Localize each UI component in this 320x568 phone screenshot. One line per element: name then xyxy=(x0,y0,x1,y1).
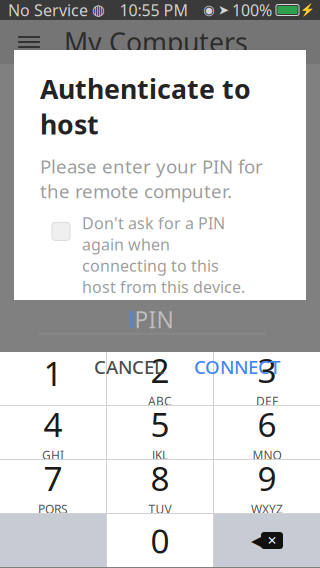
staticText: GHI xyxy=(42,447,64,463)
button[interactable]: CANCEL xyxy=(84,346,174,387)
staticText: 4 xyxy=(43,402,62,446)
staticText: My Computers xyxy=(64,24,248,60)
staticText: MNO xyxy=(252,447,281,463)
staticText: ✕ xyxy=(267,534,277,547)
staticText: 5 xyxy=(150,402,169,446)
button[interactable]: 8 xyxy=(107,460,213,513)
button[interactable]: 1 xyxy=(0,352,106,405)
button[interactable]: 3 xyxy=(214,352,320,405)
staticText: Don't ask for a PIN again when connectin… xyxy=(82,212,245,297)
button[interactable]: 2 xyxy=(107,352,213,405)
staticText: 0 xyxy=(150,518,169,563)
staticText: TUV xyxy=(148,501,171,517)
staticText: 7 xyxy=(43,456,62,500)
button[interactable]: Don't ask for a PIN again xyxy=(52,212,70,240)
button[interactable]: 0 xyxy=(107,514,213,567)
button[interactable]: CONNECT xyxy=(184,346,290,387)
staticText: 9 xyxy=(257,456,276,500)
staticText: DEF xyxy=(256,393,278,409)
staticText: PIN xyxy=(134,304,173,334)
staticText: 1 xyxy=(43,351,62,395)
button[interactable]: PIN xyxy=(38,309,266,334)
staticText: 6 xyxy=(257,402,276,446)
button[interactable]: Delete xyxy=(214,514,320,567)
staticText: CANCEL xyxy=(94,354,164,379)
button[interactable]: 5 xyxy=(107,406,213,459)
button[interactable]: 7 xyxy=(0,460,106,513)
staticText: Please enter your PIN for the remote com… xyxy=(40,154,263,203)
staticText: ◀ xyxy=(251,531,264,550)
staticText: 8 xyxy=(150,456,169,500)
staticText: 10:55 PM xyxy=(119,0,188,21)
staticText: JKL xyxy=(152,447,168,463)
staticText: CONNECT xyxy=(194,354,280,379)
staticText: 3 xyxy=(257,348,276,392)
staticText: PQRS xyxy=(38,501,68,517)
staticText: ◍ xyxy=(92,2,105,18)
staticText: No Service xyxy=(8,0,88,21)
staticText: ABC xyxy=(148,393,172,409)
staticText: 100% xyxy=(232,0,272,21)
staticText: Authenticate to host xyxy=(40,71,251,142)
button[interactable]: 4 xyxy=(0,406,106,459)
staticText: ➤ xyxy=(218,2,229,17)
staticText: WXYZ xyxy=(251,501,283,517)
staticText: ◉ xyxy=(203,2,215,17)
staticText: 2 xyxy=(150,348,169,392)
staticText: ⚡ xyxy=(300,3,315,17)
button[interactable]: 9 xyxy=(214,460,320,513)
button[interactable]: 6 xyxy=(214,406,320,459)
